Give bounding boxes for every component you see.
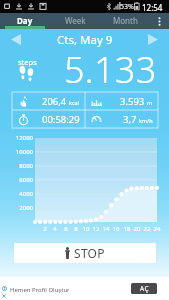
button[interactable]: 3.593	[85, 92, 158, 110]
staticText: 14	[100, 225, 112, 233]
staticText: Cts, May 9	[57, 32, 113, 48]
staticText: 5.133	[64, 45, 157, 94]
button[interactable]: More options	[150, 13, 169, 29]
staticText: 2000	[2, 204, 33, 212]
staticText: 4000	[2, 190, 33, 198]
staticText: Hemen Profil Oluştur	[10, 286, 70, 294]
staticText: Day	[17, 15, 33, 26]
button[interactable]: Next day	[139, 29, 167, 49]
staticText: 8000	[2, 162, 33, 170]
staticText: 6	[60, 225, 72, 233]
staticText: Week	[65, 15, 86, 26]
staticText: steps	[18, 57, 37, 67]
staticText: 10000	[2, 148, 33, 156]
button[interactable]: Day	[0, 13, 50, 29]
button[interactable]: 00:58:29	[12, 110, 85, 128]
staticText: Month	[113, 15, 138, 26]
button[interactable]: Previous day	[2, 29, 30, 49]
staticText: 12:54	[142, 2, 163, 13]
button[interactable]: 3,7	[85, 110, 158, 128]
staticText: 8	[70, 225, 82, 233]
staticText: 16	[110, 225, 122, 233]
staticText: m	[147, 99, 153, 106]
staticText: 20	[131, 225, 143, 233]
staticText: 3,7	[123, 113, 137, 126]
staticText: 2	[39, 225, 51, 233]
staticText: 18	[121, 225, 133, 233]
staticText: kcal	[69, 99, 80, 106]
button[interactable]: Week	[50, 13, 100, 29]
staticText: 4	[49, 225, 61, 233]
staticText: AÇ	[140, 284, 149, 293]
staticText: 24	[151, 225, 163, 233]
staticText: 206,4	[42, 95, 67, 108]
staticText: 12	[90, 225, 102, 233]
button[interactable]: 206,4	[12, 92, 85, 110]
staticText: STOP	[74, 245, 105, 261]
staticText: 10	[80, 225, 92, 233]
button[interactable]: Month	[100, 13, 150, 29]
button[interactable]: STOP	[14, 243, 156, 263]
staticText: 6000	[2, 176, 33, 184]
staticText: km/h	[139, 117, 153, 124]
staticText: 53%	[120, 2, 134, 12]
staticText: 22	[141, 225, 153, 233]
staticText: 12000	[2, 134, 33, 142]
staticText: 00:58:29	[42, 113, 80, 126]
staticText: 3.593	[120, 95, 145, 108]
button[interactable]: AÇ	[131, 283, 157, 294]
